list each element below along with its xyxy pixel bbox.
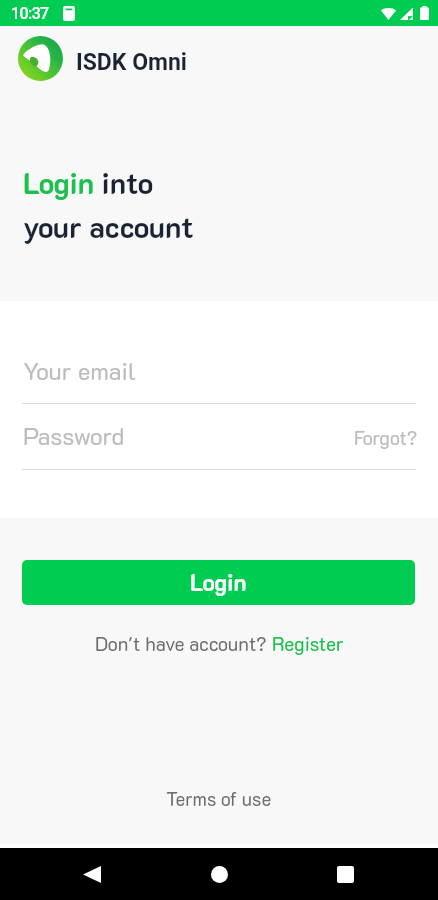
button[interactable]: Back	[69, 851, 115, 897]
button[interactable]: Forgot?	[354, 425, 418, 450]
staticText: ISDK Omni	[76, 49, 187, 76]
button[interactable]: Your email	[23, 355, 137, 386]
staticText: 10:37	[11, 4, 49, 23]
staticText: Login	[190, 567, 247, 597]
staticText: your account	[23, 208, 194, 246]
other: Battery	[420, 6, 429, 20]
other: App notification	[63, 6, 75, 21]
button[interactable]: Recent apps	[322, 851, 368, 897]
button[interactable]: Password	[23, 420, 125, 451]
button[interactable]: Register	[272, 631, 344, 656]
other: Wifi	[381, 7, 396, 20]
staticText: Login into	[23, 164, 154, 202]
other: Mobile signal	[400, 7, 413, 20]
staticText: Don't have account?	[95, 631, 272, 656]
button[interactable]: Login	[22, 560, 415, 605]
button[interactable]: Home	[196, 851, 242, 897]
button[interactable]: Terms of use	[166, 787, 272, 811]
